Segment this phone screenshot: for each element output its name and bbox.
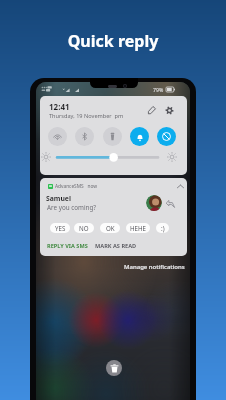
- staticText: AdvanceSMS now: [55, 183, 98, 190]
- button[interactable]: Collapse notification: [174, 180, 186, 192]
- staticText: 79%: [153, 86, 164, 93]
- button[interactable]: Settings: [163, 104, 175, 116]
- button[interactable]: Manage notifications: [122, 262, 187, 272]
- staticText: Manage notifications: [124, 263, 185, 271]
- button[interactable]: :): [156, 223, 169, 233]
- staticText: NO: [79, 224, 89, 232]
- button[interactable]: REPLY VIA SMS: [45, 240, 90, 252]
- button[interactable]: Bluetooth: [75, 127, 94, 146]
- staticText: Thursday, 19 November pm: [49, 112, 124, 120]
- button[interactable]: Notifications: [130, 127, 149, 146]
- button[interactable]: Edit quick settings: [146, 104, 158, 116]
- staticText: 12:41: [49, 101, 70, 112]
- button[interactable]: Reply: [164, 197, 177, 210]
- button[interactable]: YES: [50, 223, 70, 233]
- button[interactable]: HEHE: [126, 223, 150, 233]
- button[interactable]: OK: [100, 223, 120, 233]
- button[interactable]: Flashlight: [103, 127, 122, 146]
- staticText: HEHE: [130, 224, 147, 232]
- button[interactable]: Clear all notifications: [106, 360, 122, 376]
- staticText: OK: [106, 224, 115, 232]
- button[interactable]: NO: [74, 223, 94, 233]
- staticText: Are you coming?: [47, 203, 97, 212]
- button[interactable]: Wi-Fi: [48, 127, 67, 146]
- staticText: YES: [55, 224, 66, 232]
- staticText: MARK AS READ: [95, 242, 137, 250]
- staticText: Samuel: [46, 194, 71, 203]
- button[interactable]: MARK AS READ: [93, 240, 139, 252]
- staticText: :): [161, 224, 165, 232]
- staticText: Quick reply: [0, 30, 226, 52]
- button[interactable]: Do not disturb: [157, 127, 176, 146]
- staticText: REPLY VIA SMS: [47, 242, 88, 250]
